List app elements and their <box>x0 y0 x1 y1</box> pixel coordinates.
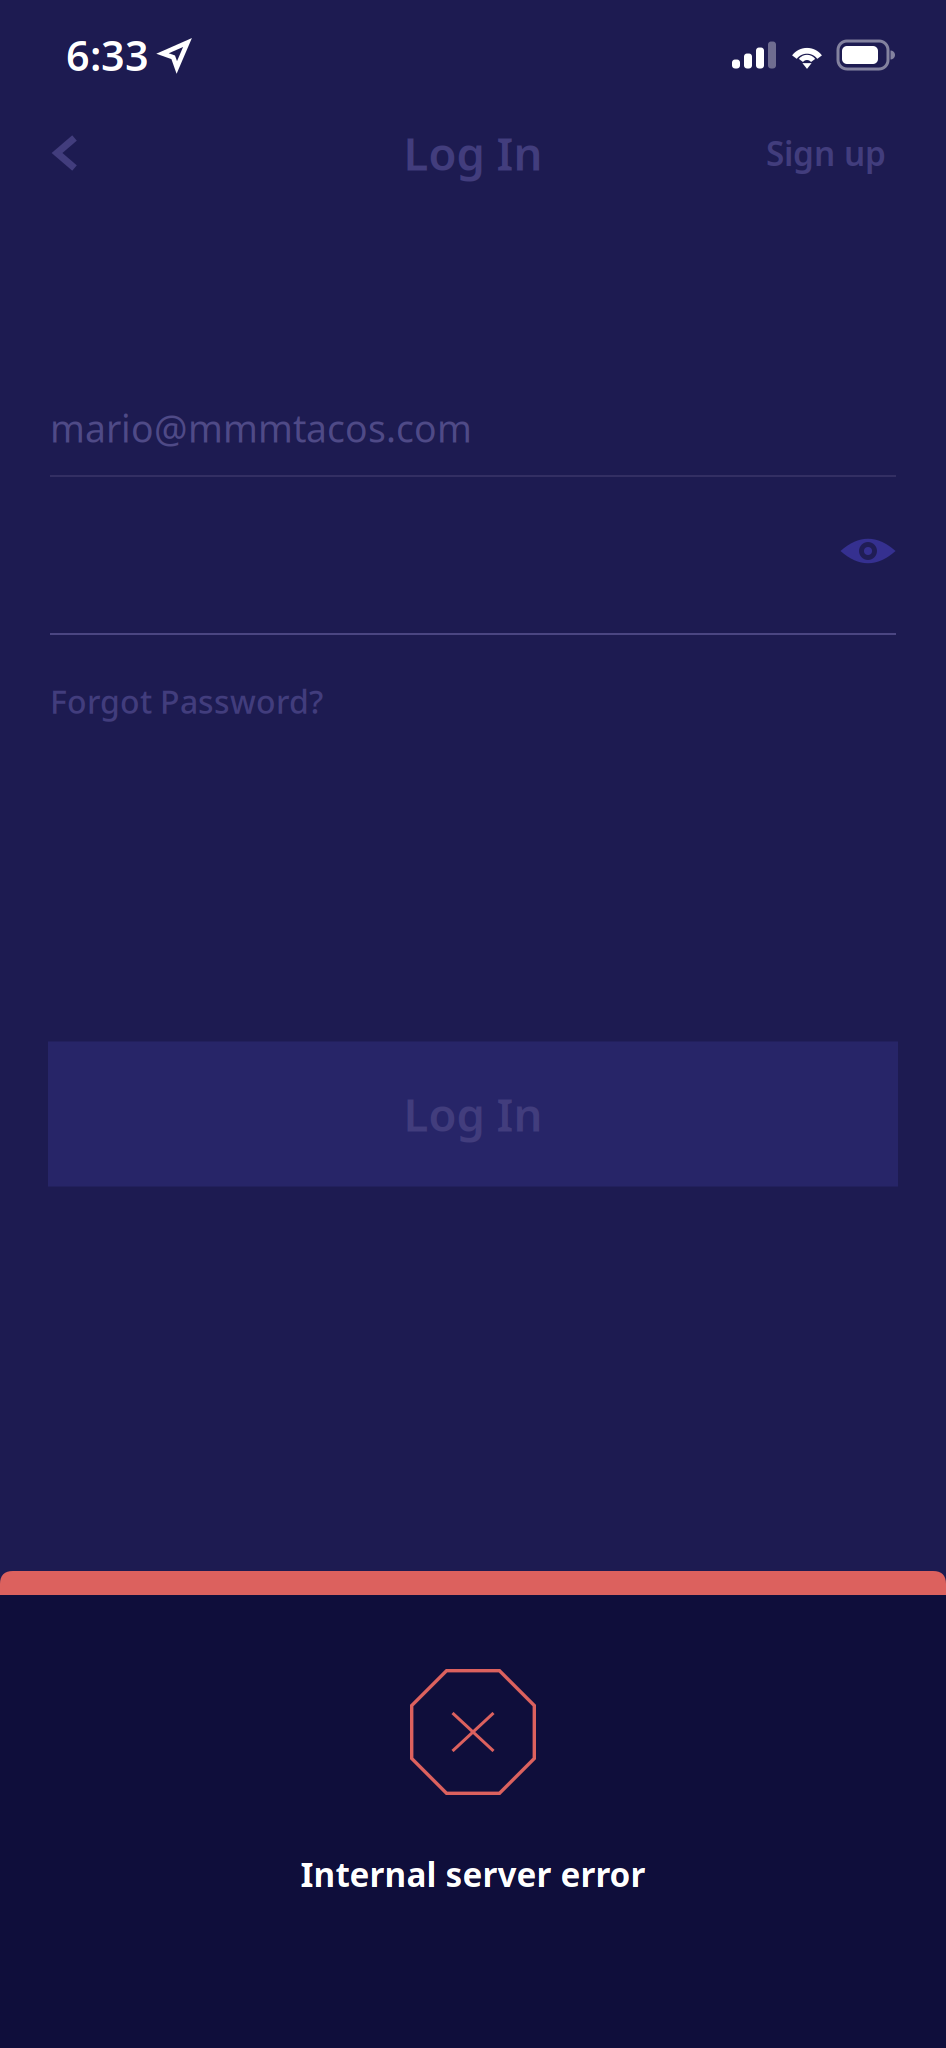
button[interactable]: Show password <box>840 523 896 579</box>
staticText: 6:33 <box>66 28 149 82</box>
staticText: Log In <box>403 1084 542 1144</box>
staticText: Forgot Password? <box>50 680 323 722</box>
staticText: Internal server error <box>300 1852 645 1896</box>
button[interactable]: Sign up <box>760 116 892 190</box>
button[interactable]: Back <box>37 116 95 190</box>
staticText: mario@mmmtacos.com <box>50 403 472 453</box>
staticText: Log In <box>403 123 542 183</box>
staticText: Sign up <box>766 131 886 175</box>
button[interactable]: Forgot Password? <box>50 635 323 767</box>
